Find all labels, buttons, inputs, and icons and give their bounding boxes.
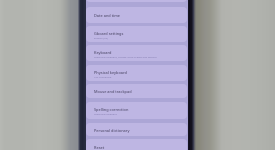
button[interactable]: Personal dictionary [86, 123, 187, 136]
button[interactable]: Keyboard [86, 45, 187, 61]
staticText: Mouse and trackpad [94, 89, 132, 94]
button[interactable]: Physical keyboard [86, 65, 187, 81]
button[interactable]: Reset [86, 139, 187, 150]
button[interactable]: Date and time [86, 7, 187, 23]
staticText: Personal dictionary [94, 128, 130, 133]
staticText: Date and time [94, 13, 121, 18]
button[interactable]: Spelling correction [86, 102, 187, 119]
button[interactable]: Mouse and trackpad [86, 84, 187, 98]
staticText: Samsung Keyboard, Google Voice Typing an… [94, 55, 157, 58]
staticText: Keyboard [94, 50, 112, 55]
staticText: Reset [94, 145, 105, 150]
button[interactable]: Gboard settings [86, 26, 187, 42]
staticText: Spelling correction [94, 107, 129, 112]
staticText: Physical keyboard [94, 70, 127, 75]
staticText: Samsung Keyboard [94, 112, 117, 115]
staticText: Gboard settings [94, 31, 124, 36]
staticText: English (US) [94, 36, 108, 39]
staticText: Not connected [94, 75, 112, 78]
